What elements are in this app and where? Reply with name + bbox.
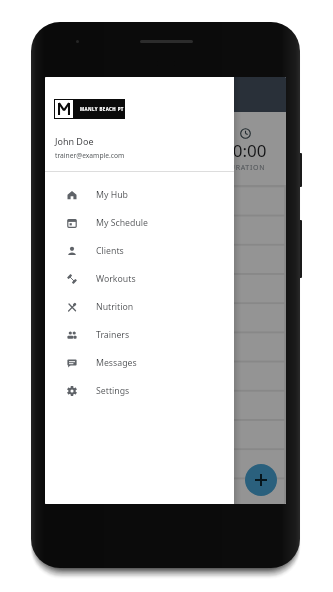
staticText: Messages	[96, 357, 137, 369]
button[interactable]: Settings	[45, 377, 234, 405]
staticText: 00:00	[223, 139, 267, 162]
button[interactable]: Clients	[45, 237, 234, 265]
staticText: My Hub	[96, 189, 128, 201]
staticText: trainer@example.com	[55, 151, 125, 160]
button[interactable]: Add	[245, 464, 277, 496]
staticText: My Schedule	[96, 217, 149, 229]
button[interactable]: Workouts	[45, 265, 234, 293]
staticText: DURATION	[224, 163, 266, 173]
button[interactable]: Trainers	[45, 321, 234, 349]
staticText: Workouts	[96, 273, 136, 285]
staticText: Trainers	[96, 329, 130, 341]
button[interactable]: Messages	[45, 349, 234, 377]
staticText: MANLY BEACH PT	[80, 106, 124, 112]
button[interactable]: My Schedule	[45, 209, 234, 237]
staticText: Clients	[96, 245, 124, 257]
button[interactable]: My Hub	[45, 181, 234, 209]
button[interactable]: Nutrition	[45, 293, 234, 321]
staticText: John Doe	[55, 135, 94, 147]
staticText: Settings	[96, 385, 130, 397]
staticText: Nutrition	[96, 301, 134, 313]
